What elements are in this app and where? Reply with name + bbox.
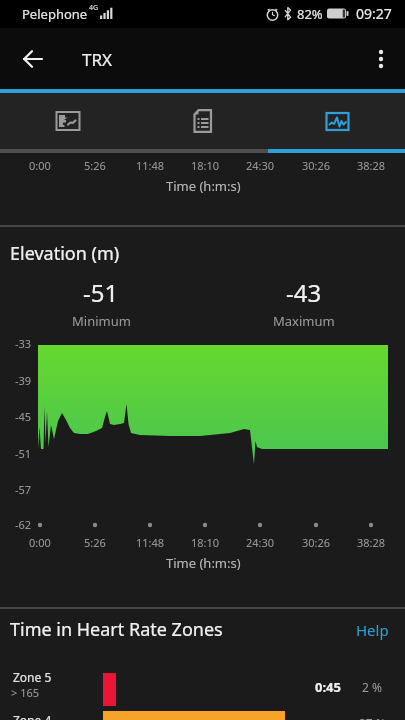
staticText: 2 % — [362, 679, 382, 695]
button[interactable] — [357, 35, 405, 83]
button[interactable] — [0, 93, 135, 149]
button[interactable] — [135, 93, 270, 149]
staticText: -57 — [15, 482, 32, 497]
staticText: -51 — [83, 276, 119, 309]
staticText: -51 — [15, 446, 32, 461]
staticText: 24:30 — [246, 535, 275, 550]
staticText: Time (h:m:s) — [166, 554, 241, 572]
staticText: 82% — [297, 5, 323, 23]
staticText: TRX — [82, 48, 112, 71]
staticText: -39 — [15, 373, 32, 388]
staticText: Time in Heart Rate Zones — [10, 617, 223, 642]
button[interactable] — [270, 93, 405, 149]
staticText: -45 — [15, 409, 32, 424]
staticText: 18:10 — [191, 158, 220, 173]
staticText: 09:27 — [356, 4, 392, 23]
staticText: Zone 5 — [13, 669, 52, 685]
staticText: Maximum — [273, 312, 335, 330]
staticText: 38:28 — [357, 158, 386, 173]
staticText: 0:00 — [29, 535, 51, 550]
staticText: Time (h:m:s) — [166, 177, 241, 195]
staticText: -62 — [15, 517, 32, 532]
button[interactable] — [9, 35, 57, 83]
staticText: 38:28 — [357, 535, 386, 550]
staticText: Pelephone — [22, 5, 88, 23]
staticText: Help — [356, 620, 389, 640]
staticText: 30:26 — [302, 158, 331, 173]
staticText: 11:48 — [136, 158, 165, 173]
staticText: -33 — [15, 336, 32, 351]
staticText: -43 — [286, 276, 322, 309]
staticText: 5:26 — [84, 535, 106, 550]
staticText: 27 % — [359, 715, 386, 720]
staticText: 0:00 — [29, 158, 51, 173]
staticText: 5:26 — [84, 158, 106, 173]
staticText: Elevation (m) — [10, 241, 120, 266]
staticText: 4G — [89, 3, 99, 13]
staticText: 11:48 — [136, 535, 165, 550]
staticText: 0:45 — [315, 678, 341, 696]
staticText: 30:26 — [302, 535, 331, 550]
staticText: > 165 — [11, 685, 40, 700]
staticText: Minimum — [72, 312, 131, 330]
button[interactable]: Help — [345, 614, 400, 646]
staticText: Zone 4 — [13, 712, 52, 720]
staticText: 24:30 — [246, 158, 275, 173]
staticText: 18:10 — [191, 535, 220, 550]
